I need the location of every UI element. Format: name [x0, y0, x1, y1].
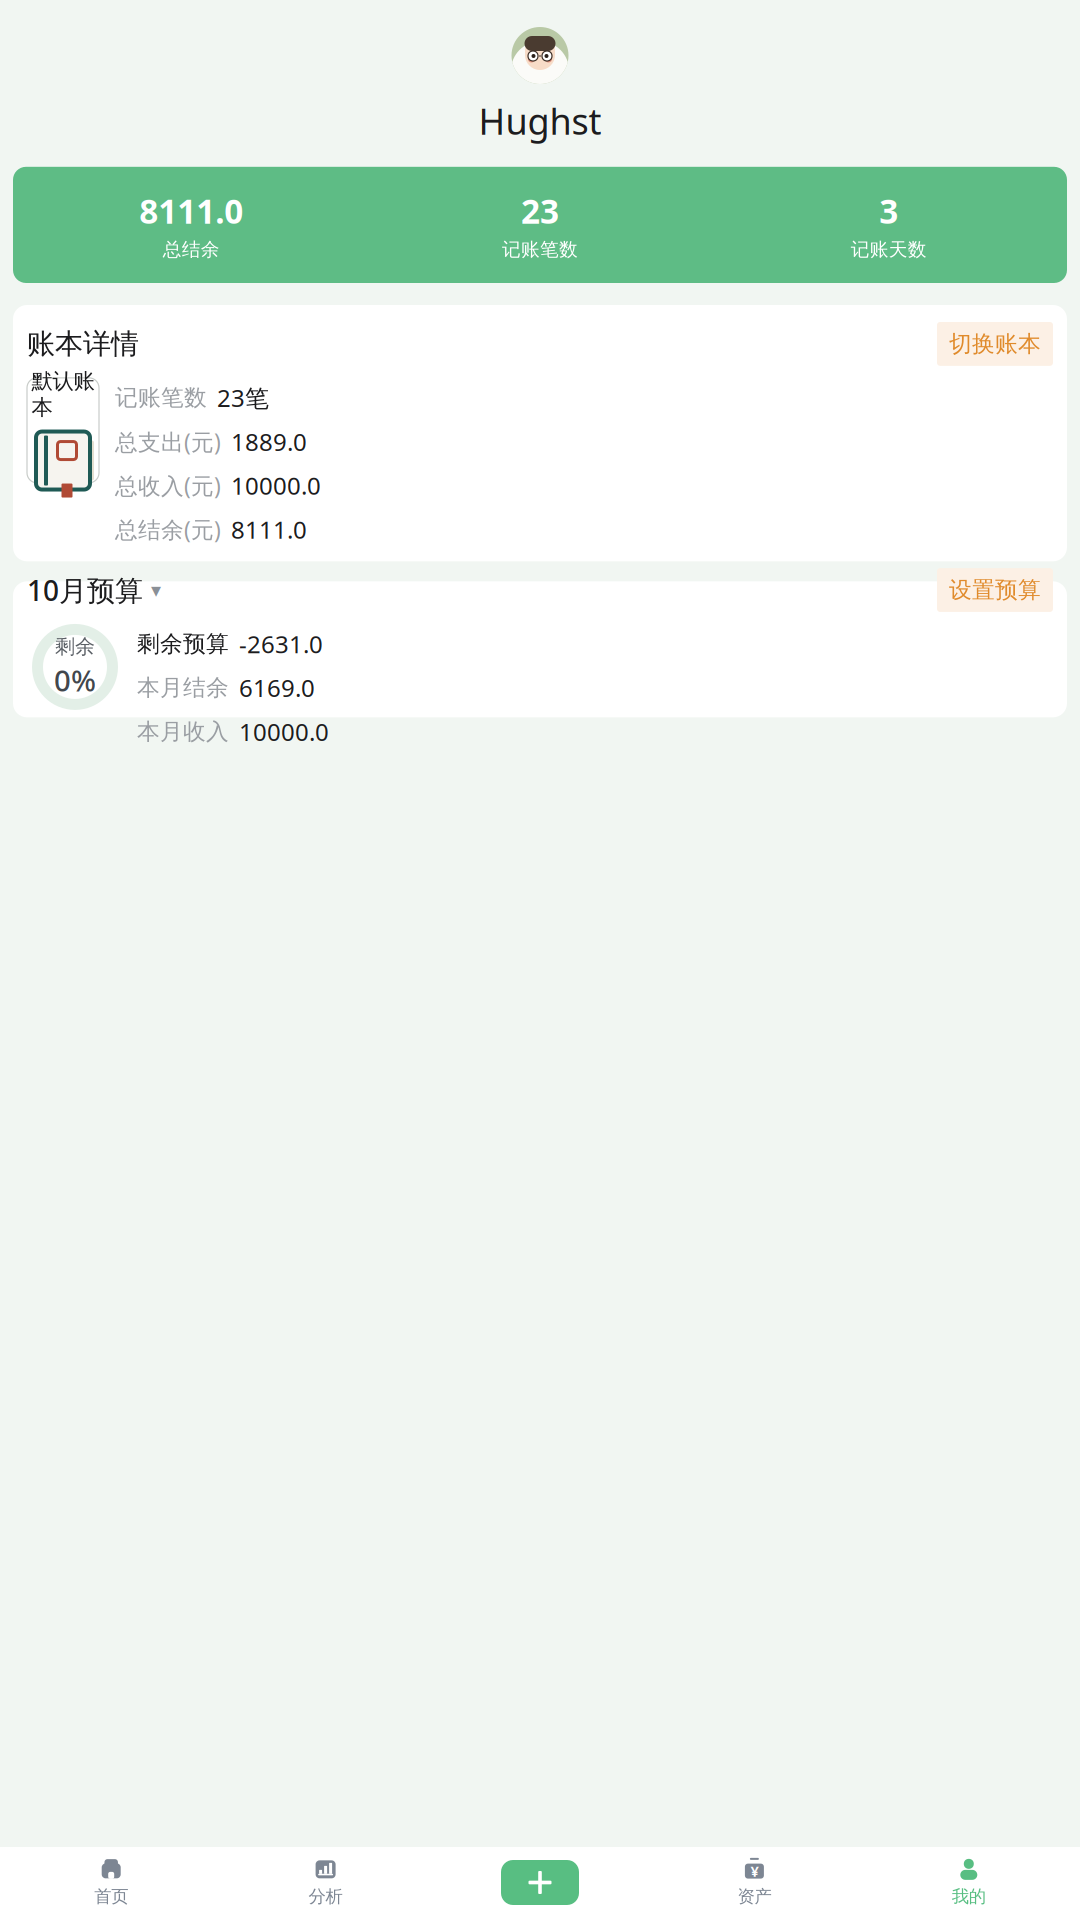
button[interactable]: 首页 [4, 1852, 218, 1913]
staticText: 本月收入 [137, 718, 229, 745]
button[interactable]: 记一笔 [433, 1860, 647, 1905]
staticText: -2631.0 [239, 628, 323, 660]
staticText: 10月预算 [27, 571, 143, 609]
staticText: 总结余 [163, 238, 220, 261]
staticText: ▾ [151, 579, 161, 601]
staticText: 资产 [737, 1886, 771, 1907]
staticText: 总支出(元) [115, 427, 221, 457]
button[interactable]: 默认账本 [27, 378, 99, 483]
staticText: 总收入(元) [115, 470, 221, 501]
staticText: 总结余(元) [115, 514, 221, 544]
button[interactable]: 切换账本 [937, 322, 1053, 366]
button[interactable]: Profile photo [511, 27, 568, 84]
staticText: 1889.0 [231, 426, 307, 458]
staticText: ¥ [750, 1861, 758, 1881]
staticText: 23笔 [217, 382, 269, 414]
staticText: 设置预算 [949, 576, 1041, 604]
button[interactable]: 设置预算 [937, 568, 1053, 612]
staticText: 3 [879, 189, 898, 233]
staticText: 剩余预算 [137, 630, 229, 658]
button[interactable]: 分析 [218, 1852, 433, 1913]
staticText: 6169.0 [239, 672, 315, 704]
staticText: 10000.0 [239, 716, 329, 748]
staticText: 本月结余 [137, 674, 229, 702]
staticText: 记账天数 [851, 238, 927, 261]
staticText: 10000.0 [231, 470, 321, 501]
staticText: Hughst [478, 97, 601, 145]
staticText: 23 [521, 189, 559, 233]
staticText: 切换账本 [949, 330, 1041, 358]
button[interactable]: 10月预算 [27, 571, 161, 609]
staticText: 分析 [309, 1886, 343, 1907]
staticText: 8111.0 [231, 513, 307, 545]
button[interactable]: ¥ [647, 1852, 862, 1913]
staticText: 0% [54, 661, 96, 700]
staticText: 默认账本 [31, 368, 94, 420]
staticText: 我的 [952, 1886, 986, 1907]
staticText: 剩余 [55, 634, 95, 659]
staticText: 记账笔数 [502, 238, 578, 261]
staticText: 记账笔数 [115, 384, 207, 412]
staticText: 首页 [94, 1886, 128, 1907]
button[interactable]: 我的 [862, 1852, 1076, 1913]
staticText: 8111.0 [139, 189, 243, 233]
staticText: 账本详情 [27, 327, 139, 361]
